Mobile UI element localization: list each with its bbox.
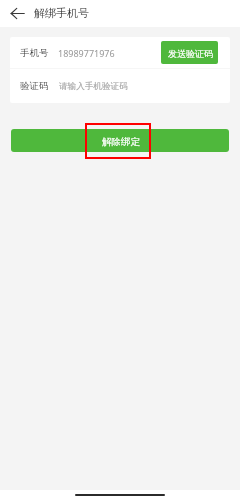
- staticText: 验证码: [20, 80, 49, 92]
- staticText: 手机号: [20, 47, 49, 59]
- button[interactable]: 验证码: [10, 69, 230, 103]
- staticText: 请输入手机验证码: [59, 81, 128, 92]
- button[interactable]: 发送验证码: [161, 41, 218, 64]
- staticText: 解除绑定: [102, 136, 140, 148]
- staticText: 18989771976: [58, 47, 115, 59]
- button[interactable]: Back: [5, 1, 29, 25]
- button[interactable]: 解除绑定: [11, 129, 229, 152]
- staticText: 发送验证码: [168, 48, 213, 59]
- staticText: 解绑手机号: [34, 6, 89, 20]
